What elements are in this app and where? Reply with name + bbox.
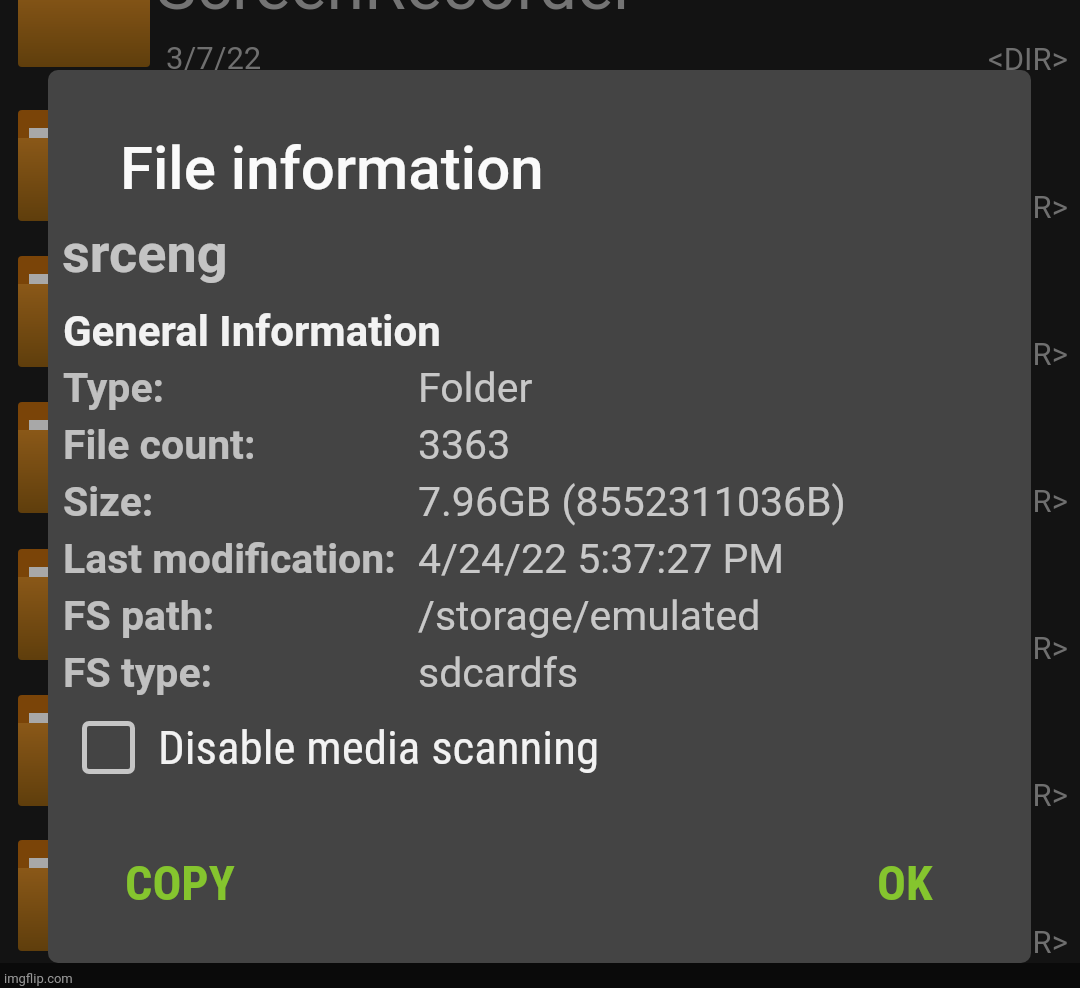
- staticText: <DIR>: [988, 189, 1068, 225]
- staticText: OK: [877, 855, 933, 911]
- button[interactable]: Disable media scanning: [82, 720, 600, 775]
- staticText: File information: [120, 133, 544, 203]
- staticText: srceng: [62, 222, 228, 285]
- staticText: COPY: [125, 855, 235, 911]
- button[interactable]: COPY: [95, 825, 265, 941]
- staticText: Disable media scanning: [158, 720, 600, 775]
- button[interactable]: OK: [847, 825, 963, 941]
- staticText: <DIR>: [988, 483, 1068, 519]
- staticText: Folder: [418, 364, 533, 412]
- staticText: <DIR>: [988, 777, 1068, 813]
- staticText: File count:: [63, 421, 256, 469]
- staticText: FS path:: [63, 592, 215, 640]
- staticText: FS type:: [63, 649, 213, 697]
- staticText: imgflip.com: [4, 971, 73, 986]
- staticText: <DIR>: [988, 41, 1068, 77]
- staticText: /storage/emulated: [418, 592, 761, 640]
- staticText: General Information: [63, 307, 441, 356]
- staticText: 3363: [418, 421, 511, 469]
- staticText: 4/24/22 5:37:27 PM: [418, 535, 785, 583]
- staticText: 7.96GB (8552311036B): [418, 478, 846, 526]
- staticText: Size:: [63, 478, 154, 526]
- staticText: 3/7/22: [166, 40, 262, 76]
- staticText: <DIR>: [988, 630, 1068, 666]
- staticText: Type:: [63, 364, 165, 412]
- staticText: <DIR>: [988, 924, 1068, 960]
- staticText: Last modification:: [63, 535, 396, 583]
- staticText: sdcardfs: [418, 649, 579, 697]
- staticText: ScreenRecorder: [156, 0, 637, 26]
- staticText: <DIR>: [988, 336, 1068, 372]
